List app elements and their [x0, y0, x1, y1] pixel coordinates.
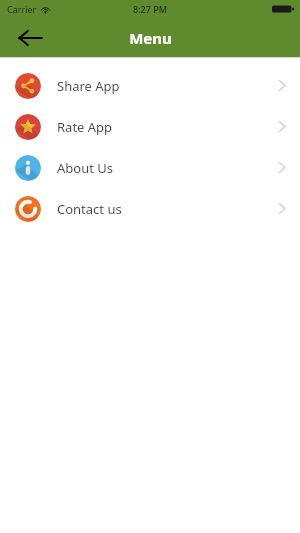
button[interactable]: About Us: [0, 147, 300, 188]
staticText: Carrier: [7, 3, 37, 15]
staticText: Contact us: [57, 200, 278, 218]
staticText: Share App: [57, 77, 278, 95]
button[interactable]: Back: [10, 18, 50, 57]
staticText: Rate App: [57, 118, 278, 136]
button[interactable]: Contact us: [0, 188, 300, 229]
staticText: About Us: [57, 159, 278, 177]
button[interactable]: Rate App: [0, 106, 300, 147]
staticText: 8:27 PM: [133, 3, 167, 15]
button[interactable]: Share App: [0, 65, 300, 106]
staticText: Menu: [129, 28, 172, 48]
